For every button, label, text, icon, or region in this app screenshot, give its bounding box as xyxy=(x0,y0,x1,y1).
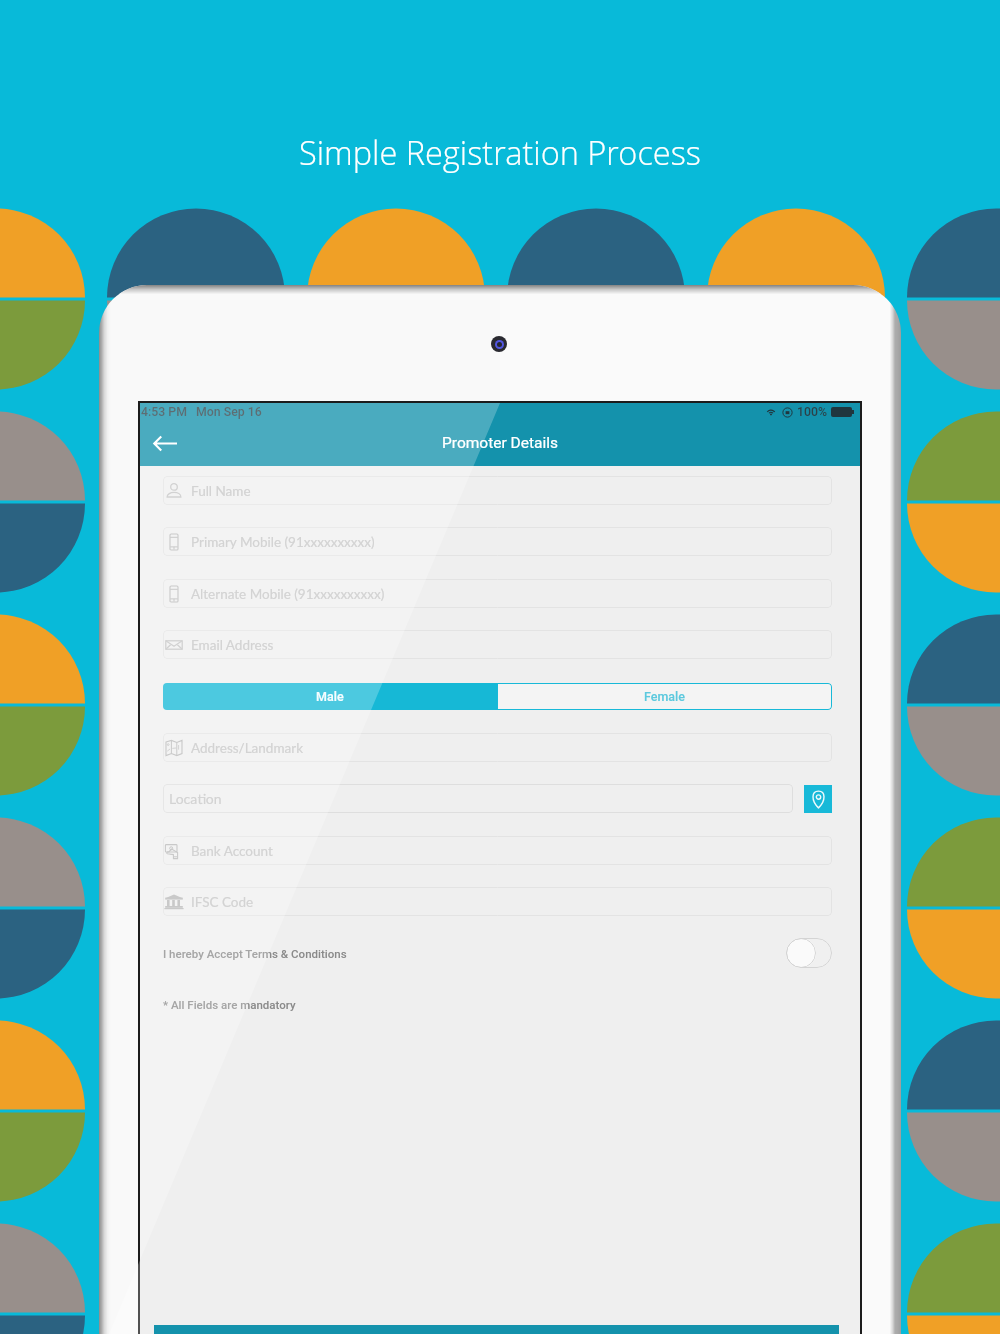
staticText: Male xyxy=(316,689,344,704)
staticText: Primary Mobile (91xxxxxxxxxx) xyxy=(191,534,375,550)
button[interactable]: Male xyxy=(163,683,497,710)
staticText: 100% xyxy=(797,405,827,419)
staticText: Bank Account xyxy=(191,843,273,859)
button[interactable]: Pick location xyxy=(804,785,832,813)
button[interactable]: Full Name xyxy=(163,476,832,505)
staticText: Full Name xyxy=(191,483,251,499)
staticText: Simple Registration Process xyxy=(299,130,701,174)
staticText: Address/Landmark xyxy=(191,740,303,756)
button[interactable]: IFSC Code xyxy=(163,887,832,916)
staticText: Location xyxy=(169,790,222,807)
button[interactable]: Location xyxy=(163,784,793,813)
staticText: IFSC Code xyxy=(191,894,254,910)
staticText: Promoter Details xyxy=(442,434,558,452)
button[interactable]: Back xyxy=(146,424,184,462)
button[interactable]: Female xyxy=(497,683,832,710)
staticText: Alternate Mobile (91xxxxxxxxxx) xyxy=(191,586,385,602)
staticText: 4:53 PM Mon Sep 16 xyxy=(141,405,262,419)
button[interactable]: Primary Mobile (91xxxxxxxxxx) xyxy=(163,527,832,556)
button[interactable]: Email Address xyxy=(163,630,832,659)
staticText: Email Address xyxy=(191,637,274,653)
button[interactable]: Alternate Mobile (91xxxxxxxxxx) xyxy=(163,579,832,608)
staticText: I hereby Accept Terms & Conditions xyxy=(163,947,347,960)
button[interactable]: Accept terms toggle xyxy=(786,938,832,968)
staticText: Female xyxy=(644,689,686,704)
staticText: * All Fields are mandatory xyxy=(163,998,296,1011)
button[interactable]: Address/Landmark xyxy=(163,733,832,762)
button[interactable]: Bank Account xyxy=(163,836,832,865)
